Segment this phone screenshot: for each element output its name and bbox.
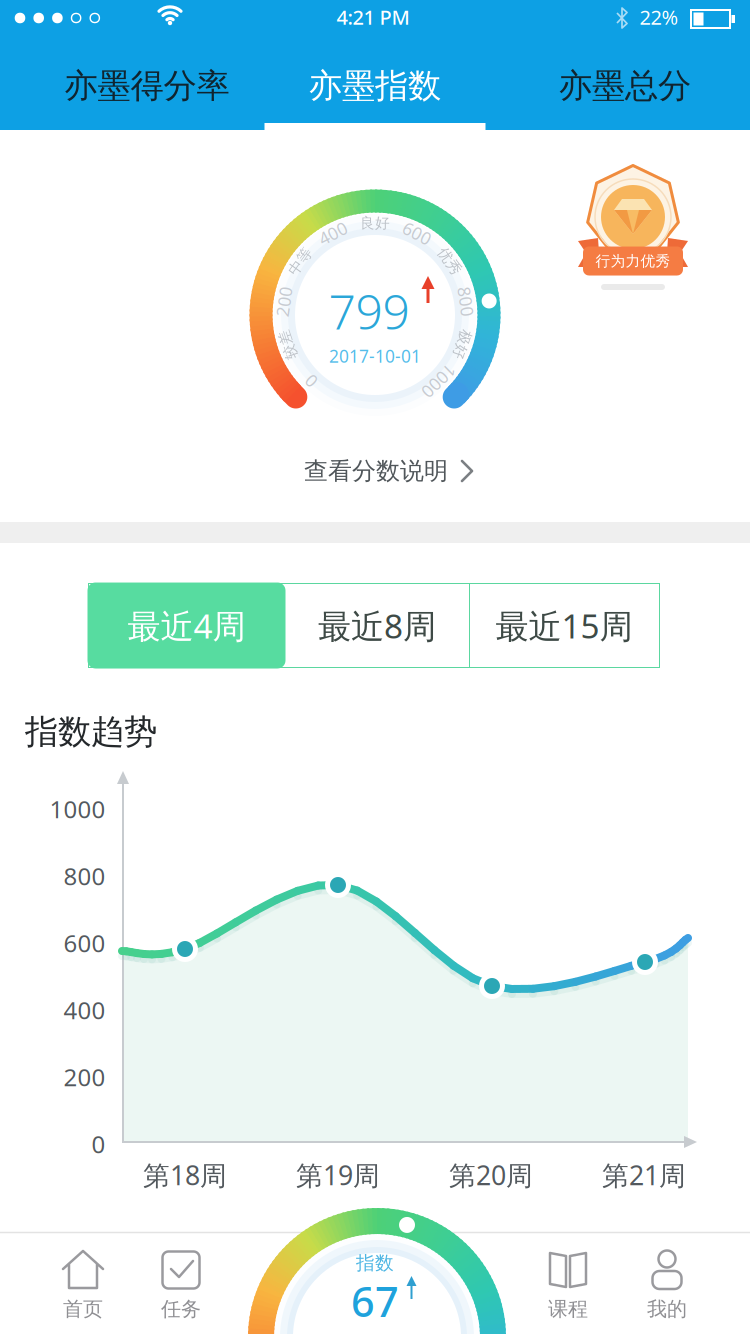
- staticText: 较差: [273, 336, 303, 354]
- staticText: 0: [306, 370, 316, 393]
- staticText: 首页: [63, 1297, 103, 1321]
- staticText: 亦墨得分率: [64, 65, 229, 106]
- button[interactable]: 最近4周: [87, 582, 285, 668]
- staticText: 最近15周: [495, 603, 632, 648]
- button[interactable]: 指数: [290, 1234, 460, 1334]
- staticText: 22%: [639, 4, 678, 30]
- staticText: 课程: [548, 1297, 588, 1321]
- button[interactable]: 亦墨指数: [265, 56, 485, 116]
- staticText: 799: [328, 279, 409, 343]
- staticText: 极好: [447, 336, 477, 354]
- staticText: 我的: [647, 1297, 687, 1321]
- staticText: 4:21 PM: [336, 4, 409, 30]
- button[interactable]: 课程: [508, 1238, 628, 1328]
- staticText: 亦墨指数: [309, 65, 441, 106]
- staticText: 亦墨总分: [559, 65, 691, 106]
- staticText: 优秀: [435, 252, 465, 270]
- staticText: 400: [63, 994, 105, 1026]
- staticText: 最近4周: [127, 603, 245, 648]
- staticText: 第21周: [602, 1157, 686, 1193]
- staticText: 800: [63, 860, 105, 892]
- button[interactable]: 我的: [607, 1238, 727, 1328]
- button[interactable]: 亦墨总分: [515, 56, 735, 116]
- staticText: 行为力优秀: [595, 252, 670, 270]
- button[interactable]: 首页: [23, 1238, 143, 1328]
- staticText: 600: [402, 222, 432, 245]
- button[interactable]: 亦墨得分率: [27, 56, 267, 116]
- staticText: 查看分数说明: [304, 456, 448, 486]
- staticText: 67: [351, 1274, 399, 1328]
- staticText: 良好: [360, 214, 390, 232]
- staticText: 0: [91, 1128, 105, 1160]
- staticText: 800: [451, 290, 481, 313]
- staticText: 1000: [49, 793, 105, 825]
- staticText: 第20周: [449, 1157, 533, 1193]
- staticText: 任务: [161, 1297, 201, 1321]
- staticText: 1000: [419, 370, 459, 393]
- staticText: 最近8周: [318, 603, 436, 648]
- staticText: 2017-10-01: [329, 344, 421, 367]
- staticText: 200: [269, 290, 299, 313]
- staticText: 指数: [356, 1251, 394, 1274]
- staticText: 中等: [285, 252, 315, 270]
- staticText: 指数趋势: [25, 711, 157, 752]
- button[interactable]: 查看分数说明: [215, 445, 535, 497]
- staticText: 第19周: [296, 1157, 380, 1193]
- button[interactable]: 最近15周: [469, 583, 659, 668]
- staticText: 第18周: [143, 1157, 227, 1193]
- button[interactable]: 最近8周: [285, 583, 469, 668]
- staticText: 600: [63, 927, 105, 959]
- staticText: 400: [318, 222, 348, 245]
- staticText: 200: [63, 1061, 105, 1093]
- button[interactable]: 任务: [121, 1238, 241, 1328]
